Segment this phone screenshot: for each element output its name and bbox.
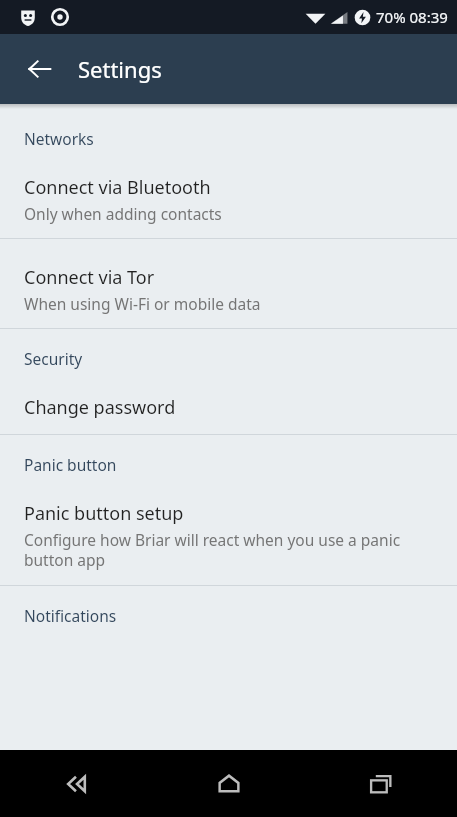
staticText: When using Wi-Fi or mobile data	[24, 293, 261, 314]
staticText: Only when adding contacts	[24, 203, 222, 224]
staticText: Notifications	[24, 605, 117, 626]
button[interactable]: Back	[16, 45, 64, 93]
button[interactable]: Change password	[0, 369, 457, 434]
staticText: Panic button setup	[24, 501, 184, 526]
button[interactable]: Recent apps	[305, 750, 457, 817]
staticText: Connect via Tor	[24, 265, 155, 290]
button[interactable]: Connect via Bluetooth	[0, 149, 457, 238]
staticText: Networks	[24, 128, 94, 149]
button[interactable]: Panic button setup	[0, 475, 457, 585]
staticText: 70% 08:39	[376, 7, 448, 27]
staticText: Panic button	[24, 454, 117, 475]
staticText: Security	[24, 348, 83, 369]
staticText: Settings	[78, 54, 162, 84]
staticText: Change password	[24, 395, 176, 420]
button[interactable]: Connect via Tor	[0, 239, 457, 328]
staticText: Configure how Briar will react when you …	[24, 529, 433, 571]
staticText: Connect via Bluetooth	[24, 175, 211, 200]
button[interactable]: Home	[153, 750, 305, 817]
button[interactable]: Back	[0, 750, 153, 817]
